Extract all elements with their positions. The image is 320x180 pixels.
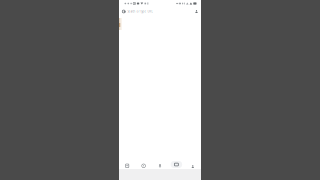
- button[interactable]: Home: [119, 156, 135, 169]
- button[interactable]: Discover: [135, 156, 152, 169]
- button[interactable]: Tabs: [168, 156, 185, 169]
- button[interactable]: Account: [192, 6, 201, 16]
- button[interactable]: Voice search: [152, 156, 168, 169]
- button[interactable]: More: [185, 156, 201, 169]
- button[interactable]: Search or type URL: [119, 7, 167, 16]
- staticText: Search or type URL: [127, 10, 152, 13]
